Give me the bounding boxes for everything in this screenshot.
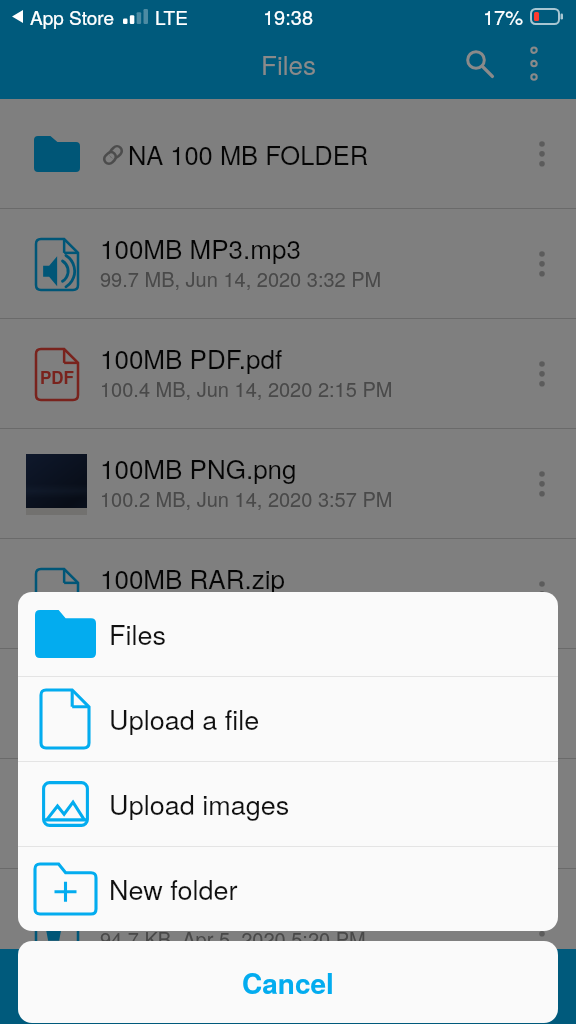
staticText: Files [109,614,166,653]
staticText: NA 100 MB FOLDER [128,136,369,173]
staticText: Upload a file [109,699,260,738]
staticText: PDF [40,365,74,389]
staticText: 100.2 MB, Jun 14, 2020 3:57 PM [100,484,393,513]
button[interactable]: New folder [18,847,558,931]
staticText: 100.0 MB, Apr 5, 2020 5:40 PM [100,814,381,843]
staticText: Upload images [109,784,290,823]
staticText: 94.7 KB, Apr 5, 2020 5:20 PM [100,924,366,953]
staticText: Cancel [242,962,334,1002]
staticText: Files [261,45,316,82]
button[interactable]: Item options [507,869,576,979]
button[interactable]: 100MB TXT.txt [0,649,576,759]
staticText: 100MB RAR.zip [100,559,285,596]
button[interactable]: 100MB RAR.zip [0,539,576,649]
button[interactable]: Item options [507,429,576,539]
button[interactable]: Files [18,592,558,676]
staticText: 100MB TXT.txt [100,669,271,706]
button[interactable]: 100MB PNG.png [0,429,576,539]
button[interactable]: More options [510,32,558,99]
button[interactable]: Item options [507,99,576,209]
staticText: 100.4 MB, Jun 14, 2020 2:15 PM [100,374,393,403]
button[interactable]: Item options [507,209,576,319]
button[interactable]: Upload a file [18,677,558,761]
staticText: App Store [30,3,115,30]
button[interactable]: Item options [507,319,576,429]
staticText: 100MB ZIP.zip [100,779,267,816]
button[interactable]: NA 100 MB FOLDER [0,99,576,209]
staticText: 100MB PNG.png [100,449,297,486]
button[interactable]: Item options [507,649,576,759]
staticText: LTE [155,3,188,30]
button[interactable]: 1MB TEST.txt [0,869,576,979]
button[interactable]: PDF [0,319,576,429]
button[interactable]: 100MB MP3.mp3 [0,209,576,319]
staticText: 99.7 MB, Jun 14, 2020 3:32 PM [100,264,382,293]
staticText: 100.0 MB, Apr 5, 2020 5:23 PM [100,704,381,733]
staticText: 19:38 [263,2,314,31]
staticText: New folder [109,869,238,908]
button[interactable]: Upload images [18,762,558,846]
staticText: 1MB TEST.txt [100,889,259,926]
button[interactable]: 100MB ZIP.zip [0,759,576,869]
staticText: 17% [483,2,524,31]
button[interactable]: Item options [507,539,576,649]
staticText: 100MB MP3.mp3 [100,229,301,266]
button[interactable]: Cancel [18,941,558,1023]
button[interactable]: Search [446,32,506,99]
button[interactable]: Item options [507,759,576,869]
staticText: 100MB PDF.pdf [100,339,283,376]
